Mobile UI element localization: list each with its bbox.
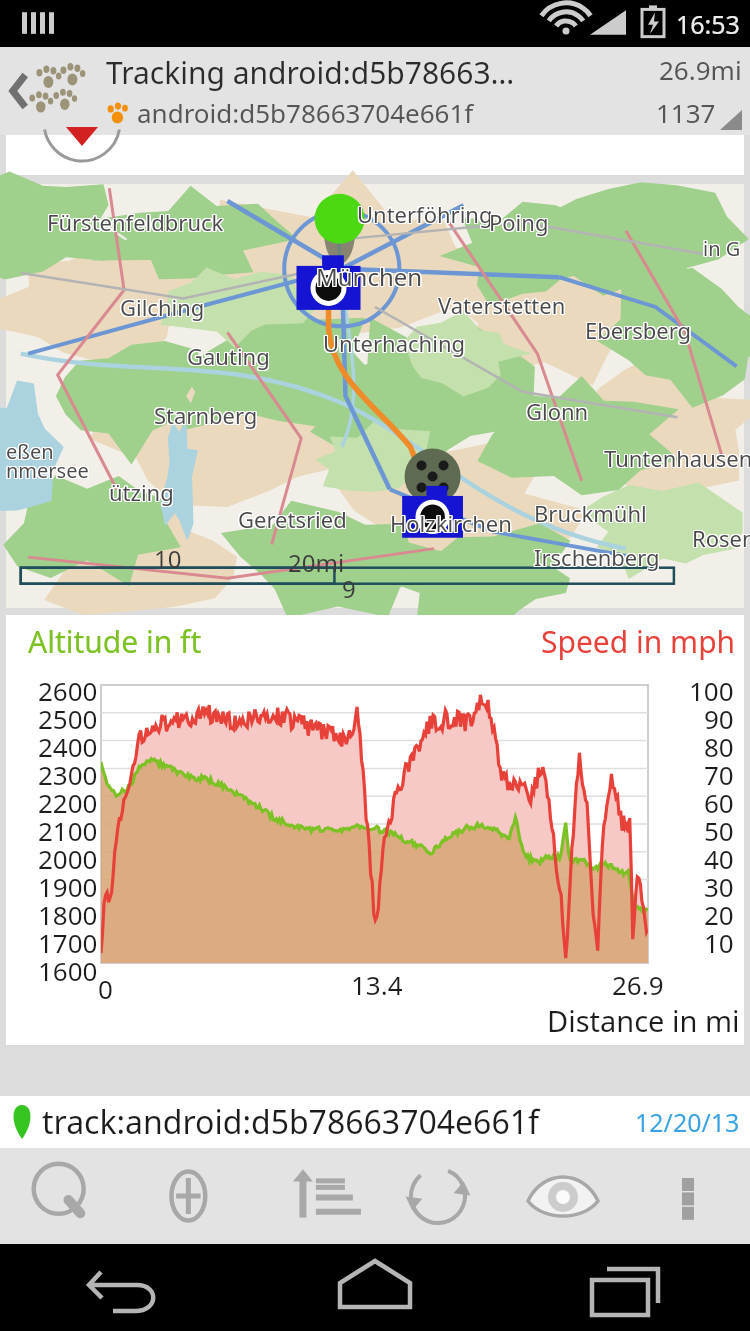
staticText: Tuntenhausen <box>604 444 750 474</box>
staticText: Starnberg <box>155 399 259 429</box>
staticText: Bruckmühl <box>534 497 647 527</box>
staticText: Ebersberg <box>585 315 692 345</box>
staticText: Geretsried <box>237 503 346 533</box>
staticText: Unterhaching <box>322 329 465 359</box>
staticText: Fürstenfeldbruck <box>48 206 225 236</box>
staticText: 26.9 <box>612 967 664 1002</box>
staticText: eßen <box>7 439 55 466</box>
button[interactable]: Show <box>500 1148 625 1244</box>
staticText: Ebersberg <box>586 316 693 346</box>
staticText: Unterhaching <box>323 329 466 359</box>
staticText: Starnberg <box>155 401 259 431</box>
staticText: in G <box>702 236 740 263</box>
staticText: 2200 <box>38 785 98 813</box>
staticText: nmersee <box>6 457 89 484</box>
staticText: 1800 <box>38 897 98 925</box>
staticText: Fürstenfeldbruck <box>46 206 223 236</box>
button[interactable]: Add <box>125 1148 250 1244</box>
button[interactable]: More options <box>625 1148 750 1244</box>
staticText: ützing <box>108 476 173 506</box>
button[interactable]: Back <box>0 1244 250 1331</box>
staticText: Glonn <box>525 395 588 425</box>
staticText: Glonn <box>525 397 588 427</box>
staticText: ützing <box>110 478 175 508</box>
staticText: Glonn <box>527 397 590 427</box>
staticText: Irschenberg <box>535 543 661 573</box>
staticText: Bruckmühl <box>535 498 648 528</box>
staticText: Unterföhring <box>356 198 492 228</box>
staticText: Poing <box>489 206 549 236</box>
staticText: Gilching <box>121 291 206 321</box>
staticText: in G <box>702 234 740 261</box>
staticText: 2100 <box>38 813 98 841</box>
staticText: 50 <box>704 813 734 841</box>
staticText: Bruckmühl <box>533 499 646 529</box>
staticText: Geretsried <box>237 505 346 535</box>
staticText: Gauting <box>188 340 271 370</box>
staticText: Bruckmühl <box>534 499 647 529</box>
staticText: Starnberg <box>154 401 258 431</box>
staticText: Geretsried <box>239 504 348 534</box>
button[interactable]: Navigate up <box>0 47 750 135</box>
staticText: eßen <box>5 439 53 466</box>
staticText: Geretsried <box>238 503 347 533</box>
button[interactable]: Home <box>250 1244 500 1331</box>
button[interactable]: track:android:d5b78663704e661f <box>0 1096 750 1148</box>
staticText: Ebersberg <box>584 315 691 345</box>
staticText: in G <box>704 234 742 261</box>
button[interactable]: Refresh <box>375 1148 500 1244</box>
staticText: eßen <box>5 437 53 464</box>
button[interactable]: Search <box>0 1148 125 1244</box>
button[interactable]: Track map <box>6 184 744 608</box>
button[interactable]: Altitude and speed chart <box>6 615 744 1045</box>
staticText: Tuntenhausen <box>603 442 750 472</box>
staticText: Fürstenfeldbruck <box>48 208 225 238</box>
staticText: 2000 <box>38 841 98 869</box>
staticText: Bruckmühl <box>533 497 646 527</box>
staticText: Gauting <box>186 342 269 372</box>
staticText: Geretsried <box>239 503 348 533</box>
staticText: Gilching <box>120 291 205 321</box>
staticText: Unterhaching <box>323 328 466 358</box>
staticText: Gauting <box>186 340 269 370</box>
staticText: Glonn <box>527 395 590 425</box>
staticText: München <box>316 260 423 293</box>
staticText: 0 <box>98 971 113 1006</box>
staticText: nmersee <box>7 458 90 485</box>
staticText: Gilching <box>121 293 206 323</box>
staticText: 70 <box>704 757 734 785</box>
staticText: Tuntenhausen <box>604 443 750 473</box>
staticText: Starnberg <box>154 400 258 430</box>
staticText: Rosen <box>692 522 750 552</box>
staticText: ützing <box>109 476 174 506</box>
staticText: Glonn <box>526 395 589 425</box>
button[interactable]: Sort <box>250 1148 375 1244</box>
staticText: München <box>315 261 422 294</box>
staticText: Glonn <box>525 396 588 426</box>
staticText: 9 <box>342 572 356 605</box>
staticText: Gilching <box>121 292 206 322</box>
button[interactable]: Recent apps <box>500 1244 750 1331</box>
staticText: Holzkirchen <box>389 507 511 537</box>
staticText: Unterföhring <box>357 200 493 230</box>
staticText: Bruckmühl <box>534 498 647 528</box>
staticText: Ebersberg <box>586 314 693 344</box>
staticText: Fürstenfeldbruck <box>47 207 224 237</box>
staticText: Unterföhring <box>357 198 493 228</box>
staticText: Tracking android:d5b78663… <box>106 52 515 93</box>
staticText: Irschenberg <box>535 541 661 571</box>
staticText: Rosen <box>693 524 750 554</box>
staticText: Tuntenhausen <box>603 443 750 473</box>
staticText: Gilching <box>120 293 205 323</box>
staticText: Irschenberg <box>534 543 660 573</box>
staticText: Ebersberg <box>585 314 692 344</box>
staticText: Fürstenfeldbruck <box>46 208 223 238</box>
staticText: in G <box>703 236 741 263</box>
button[interactable] <box>6 135 744 175</box>
staticText: Fürstenfeldbruck <box>46 207 223 237</box>
staticText: Ebersberg <box>586 315 693 345</box>
staticText: Ebersberg <box>584 316 691 346</box>
staticText: Tuntenhausen <box>604 442 750 472</box>
other: Navigate up <box>6 66 32 116</box>
staticText: Gilching <box>119 291 204 321</box>
